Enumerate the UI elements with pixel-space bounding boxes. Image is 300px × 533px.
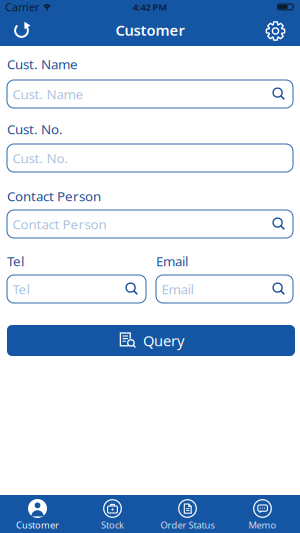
staticText: Cust. Name [12, 85, 83, 103]
button[interactable]: Order Status [150, 495, 225, 533]
button[interactable]: Cust. No. [7, 144, 293, 172]
button[interactable]: Stock [75, 495, 150, 533]
staticText: Tel [7, 252, 24, 270]
staticText: Cust. No. [7, 120, 63, 138]
staticText: Cust. No. [12, 149, 68, 167]
button[interactable]: Query [7, 325, 295, 356]
staticText: Order Status [160, 519, 214, 531]
button[interactable]: Contact Person [7, 210, 293, 238]
button[interactable]: Tel [7, 275, 146, 303]
staticText: 4:42 PM [132, 1, 167, 13]
button[interactable]: Cust. Name [7, 80, 293, 108]
staticText: Email [156, 252, 188, 270]
staticText: Carrier [5, 0, 39, 14]
button[interactable]: Memo [225, 495, 300, 533]
staticText: Cust. Name [7, 55, 78, 73]
button[interactable]: Refresh [12, 20, 31, 39]
button[interactable]: Search [272, 282, 286, 296]
staticText: Email [161, 280, 193, 298]
staticText: Tel [12, 280, 29, 298]
staticText: Contact Person [12, 215, 106, 233]
button[interactable]: Search [272, 87, 286, 101]
button[interactable]: Email [156, 275, 293, 303]
staticText: Contact Person [7, 187, 101, 205]
staticText: Stock [101, 519, 124, 531]
button[interactable]: Customer [0, 495, 75, 533]
staticText: Query [143, 331, 184, 350]
staticText: Customer [115, 20, 184, 40]
staticText: Customer [16, 519, 59, 531]
button[interactable]: Settings [265, 21, 285, 41]
button[interactable]: Search [272, 217, 286, 231]
staticText: Memo [248, 519, 276, 531]
button[interactable]: Search [125, 282, 139, 296]
